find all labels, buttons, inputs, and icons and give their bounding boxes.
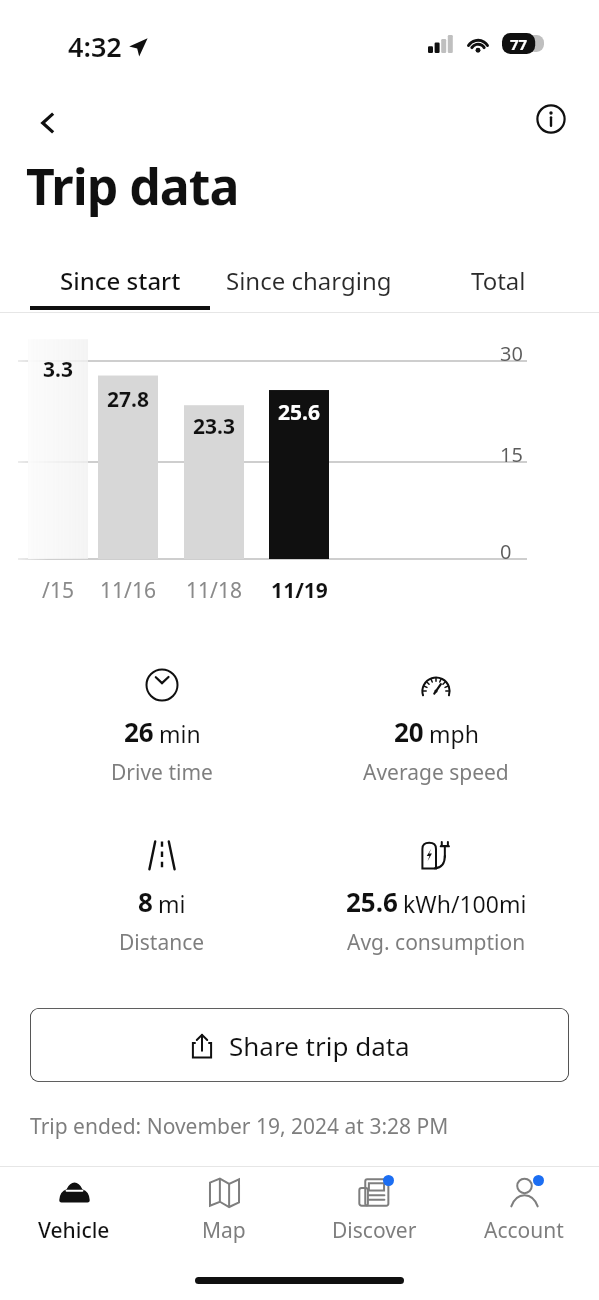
button[interactable]: Total <box>406 252 590 308</box>
staticText: kWh/100mi <box>403 888 527 919</box>
staticText: Share trip data <box>229 1028 410 1063</box>
staticText: 25.6 <box>278 398 320 427</box>
staticText: 27.8 <box>107 385 149 414</box>
staticText: 11/18 <box>186 576 242 605</box>
staticText: Map <box>202 1216 246 1245</box>
staticText: mi <box>158 888 186 919</box>
staticText: 4:32 <box>68 28 122 65</box>
staticText: 23.3 <box>193 412 235 441</box>
staticText: Since start <box>60 264 181 297</box>
button[interactable]: Back <box>20 95 76 151</box>
staticText: 3.3 <box>43 355 73 384</box>
button[interactable]: Information <box>524 92 578 146</box>
staticText: Drive time <box>111 758 213 787</box>
staticText: 20 <box>394 714 424 749</box>
button[interactable]: Map <box>150 1176 298 1258</box>
button[interactable]: Vehicle <box>0 1176 148 1258</box>
staticText: Trip data <box>26 152 239 220</box>
staticText: Total <box>471 264 526 297</box>
staticText: 15 <box>500 441 523 468</box>
button[interactable]: Discover <box>300 1176 448 1258</box>
button[interactable]: Account <box>450 1176 598 1258</box>
button[interactable]: 25.6 <box>316 838 556 957</box>
staticText: 26 <box>124 714 154 749</box>
staticText: 30 <box>500 340 523 367</box>
button[interactable]: Since charging <box>217 252 401 308</box>
staticText: 8 <box>138 884 153 919</box>
button[interactable]: 8 <box>42 838 282 957</box>
staticText: Trip ended: November 19, 2024 at 3:28 PM <box>30 1112 449 1141</box>
staticText: Average speed <box>363 758 509 787</box>
staticText: /15 <box>42 576 74 605</box>
button[interactable]: Since start <box>28 252 212 308</box>
button[interactable]: Share trip data <box>30 1008 569 1082</box>
staticText: 77 <box>510 34 528 54</box>
button[interactable]: 20 <box>316 668 556 787</box>
staticText: Account <box>484 1216 564 1245</box>
staticText: 25.6 <box>346 884 398 919</box>
staticText: Vehicle <box>38 1216 110 1245</box>
staticText: min <box>159 718 201 749</box>
staticText: 11/19 <box>271 576 328 605</box>
staticText: Avg. consumption <box>347 928 526 957</box>
staticText: 0 <box>500 538 512 565</box>
button[interactable]: 26 <box>42 668 282 787</box>
staticText: Since charging <box>226 264 392 297</box>
staticText: 11/16 <box>100 576 156 605</box>
staticText: Discover <box>332 1216 417 1245</box>
staticText: mph <box>429 718 479 749</box>
staticText: Distance <box>119 928 205 957</box>
